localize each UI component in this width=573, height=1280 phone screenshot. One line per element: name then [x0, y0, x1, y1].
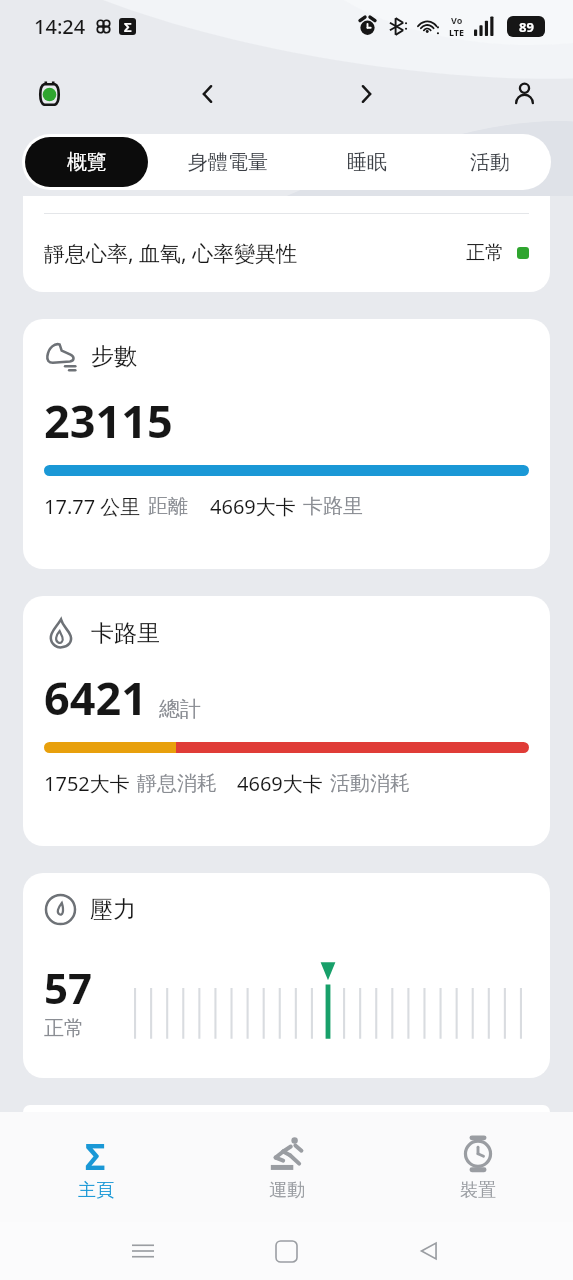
staticText: 6421 — [44, 667, 147, 728]
staticText: 1752大卡 — [44, 770, 130, 797]
staticText: 壓力 — [90, 895, 136, 924]
button[interactable]: Watch — [26, 71, 72, 117]
staticText: LTE — [449, 26, 465, 38]
button[interactable]: 卡路里 — [23, 596, 550, 846]
staticText: 運動 — [269, 1179, 305, 1202]
button[interactable]: 概覽 — [25, 137, 148, 187]
staticText: 活動消耗 — [330, 771, 410, 796]
staticText: 靜息心率, 血氧, 心率變異性 — [44, 239, 298, 268]
staticText: 靜息消耗 — [137, 771, 217, 796]
staticText: 23115 — [44, 390, 173, 451]
staticText: 4669大卡 — [237, 770, 323, 797]
staticText: 卡路里 — [91, 619, 160, 648]
staticText: 89 — [519, 18, 534, 36]
staticText: 卡路里 — [303, 494, 363, 519]
staticText: 正常 — [44, 1016, 84, 1041]
staticText: 17.77 公里 — [44, 493, 141, 520]
staticText: 距離 — [148, 494, 188, 519]
staticText: 活動 — [470, 150, 510, 175]
staticText: 身體電量 — [188, 150, 268, 175]
staticText: 4669大卡 — [210, 493, 296, 520]
staticText: 睡眠 — [347, 150, 387, 175]
staticText: Σ — [85, 1133, 106, 1173]
button[interactable]: 睡眠 — [308, 137, 425, 187]
button[interactable]: 裝置 — [382, 1112, 573, 1222]
staticText: 正常 — [466, 241, 504, 265]
button[interactable]: 壓力 — [23, 873, 550, 1078]
button[interactable]: Previous day — [185, 71, 231, 117]
button[interactable]: 活動 — [431, 137, 548, 187]
button[interactable]: 步數 — [23, 319, 550, 569]
staticText: Σ — [124, 18, 132, 35]
staticText: 概覽 — [67, 150, 107, 175]
button[interactable]: Recent apps — [120, 1228, 166, 1274]
staticText: 主頁 — [78, 1179, 114, 1202]
button[interactable]: 靜息心率, 血氧, 心率變異性 — [23, 196, 550, 292]
staticText: 14:24 — [34, 13, 86, 40]
button[interactable]: Profile — [501, 71, 547, 117]
button[interactable]: Next day — [343, 71, 389, 117]
staticText: 57 — [44, 959, 93, 1016]
button[interactable]: Back — [406, 1228, 452, 1274]
button[interactable]: Σ — [0, 1112, 191, 1222]
staticText: 裝置 — [460, 1179, 496, 1202]
staticText: Vo — [451, 14, 463, 26]
button[interactable]: 身體電量 — [154, 137, 302, 187]
button[interactable]: Home — [263, 1228, 309, 1274]
staticText: 總計 — [159, 696, 201, 722]
button[interactable]: 運動 — [191, 1112, 382, 1222]
staticText: 步數 — [91, 342, 137, 371]
